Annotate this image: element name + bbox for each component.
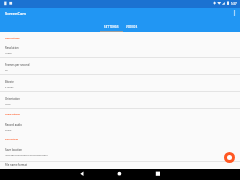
staticText: Audio settings	[5, 113, 20, 116]
staticText: 30	[5, 68, 8, 71]
staticText: Orientation	[5, 97, 20, 101]
staticText: Frames per second	[5, 63, 30, 67]
button[interactable]: Orientation	[0, 93, 240, 108]
staticText: Bitrate	[5, 80, 14, 84]
button[interactable]: Save location	[0, 145, 240, 159]
button[interactable]: Frames per second	[0, 59, 240, 74]
staticText: Resolution	[5, 46, 19, 50]
button[interactable]: Resolution	[0, 42, 240, 57]
staticText: Save options	[5, 138, 18, 141]
button[interactable]: Record	[224, 152, 235, 163]
button[interactable]: Record audio	[0, 120, 240, 134]
button[interactable]: File name format	[0, 162, 240, 171]
staticText: /storage/emulated/0/ScreenRecorder	[5, 153, 48, 156]
staticText: VIDEOS	[126, 25, 138, 29]
staticText: 1:37	[231, 2, 237, 6]
staticText: ScreenCam	[5, 11, 26, 16]
button[interactable]: Bitrate	[0, 76, 240, 91]
button[interactable]: SETTINGS	[100, 20, 123, 32]
staticText: Auto	[5, 102, 11, 105]
staticText: File name format	[5, 163, 27, 167]
staticText: SETTINGS	[104, 25, 119, 29]
staticText: Video settings	[5, 37, 20, 40]
staticText: Some	[5, 128, 12, 131]
staticText: 1080P	[5, 51, 12, 54]
button[interactable]: VIDEOS	[123, 20, 141, 32]
staticText: Save location	[5, 148, 22, 152]
staticText: Record audio	[5, 123, 22, 127]
staticText: 5 Mbps	[5, 85, 14, 88]
button[interactable]: More options	[228, 7, 240, 19]
